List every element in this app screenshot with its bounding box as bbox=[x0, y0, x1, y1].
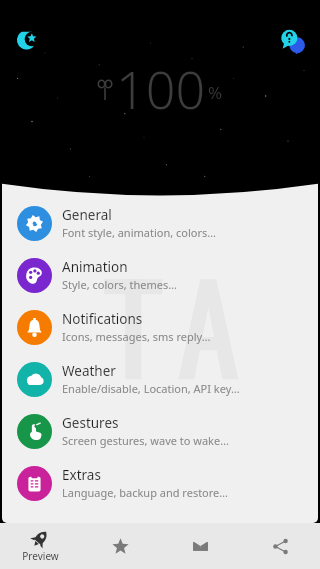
staticText: % bbox=[208, 81, 223, 104]
staticText: 100 bbox=[116, 53, 206, 124]
staticText: Notifications bbox=[62, 310, 143, 328]
staticText: Language, backup and restore… bbox=[62, 485, 228, 500]
staticText: Extras bbox=[62, 466, 101, 484]
staticText: Animation bbox=[62, 258, 128, 276]
button[interactable]: Night mode bbox=[10, 22, 46, 58]
staticText: Weather bbox=[62, 362, 116, 380]
staticText: Enable/disable, Location, API key… bbox=[62, 381, 240, 396]
staticText: Font style, animation, colors… bbox=[62, 225, 216, 240]
staticText: Preview bbox=[22, 549, 59, 563]
button[interactable]: Email bbox=[160, 523, 240, 569]
button[interactable]: Preview bbox=[0, 523, 80, 569]
button[interactable]: General bbox=[2, 197, 318, 249]
staticText: Screen gestures, wave to wake… bbox=[62, 433, 229, 448]
button[interactable]: Favorites bbox=[80, 523, 160, 569]
staticText: Gestures bbox=[62, 414, 119, 432]
button[interactable]: Weather bbox=[2, 353, 318, 405]
button[interactable]: Animation bbox=[2, 249, 318, 301]
button[interactable]: Share bbox=[240, 523, 320, 569]
staticText: General bbox=[62, 206, 112, 224]
staticText: Icons, messages, sms reply… bbox=[62, 329, 211, 344]
button[interactable]: Notifications bbox=[2, 301, 318, 353]
button[interactable]: Help bbox=[274, 22, 312, 60]
button[interactable]: Extras bbox=[2, 457, 318, 509]
staticText: Style, colors, themes… bbox=[62, 277, 177, 292]
button[interactable]: Gestures bbox=[2, 405, 318, 457]
